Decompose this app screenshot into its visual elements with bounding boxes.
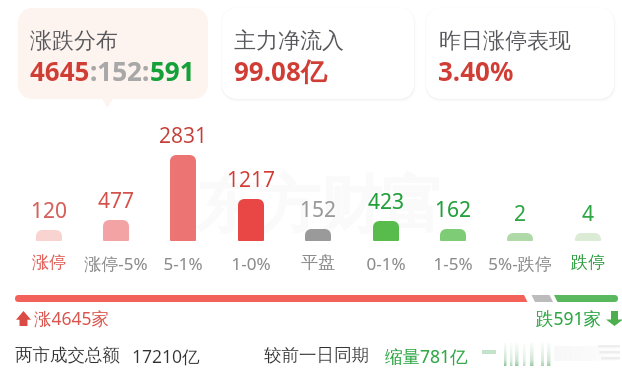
staticText: 4645 bbox=[30, 53, 90, 88]
staticText: 涨跌分布 bbox=[30, 27, 118, 55]
staticText: 主力净流入 bbox=[234, 27, 344, 55]
button[interactable]: 主力净流入 bbox=[222, 8, 414, 99]
staticText: 591 bbox=[150, 53, 195, 88]
button[interactable] bbox=[285, 112, 351, 272]
staticText: 162 bbox=[419, 195, 487, 224]
button[interactable] bbox=[487, 112, 553, 272]
staticText: :152: bbox=[90, 53, 150, 88]
button[interactable] bbox=[353, 112, 419, 272]
staticText: 较前一日同期 bbox=[264, 344, 369, 366]
staticText: 152 bbox=[284, 195, 352, 224]
button[interactable]: 涨4645家 bbox=[16, 306, 110, 330]
staticText: 平盘 bbox=[273, 252, 363, 273]
staticText: 缩量781亿 bbox=[385, 344, 468, 368]
staticText: 1217 bbox=[217, 165, 285, 194]
staticText: 2 bbox=[486, 199, 554, 228]
staticText: 东方财富 bbox=[196, 166, 444, 244]
staticText: 423 bbox=[352, 187, 420, 216]
button[interactable] bbox=[420, 112, 486, 272]
button[interactable]: 昨日涨停表现 bbox=[426, 8, 614, 99]
staticText: 跌停 bbox=[543, 252, 622, 273]
button[interactable]: 跌591家 bbox=[536, 306, 622, 330]
button[interactable] bbox=[16, 112, 82, 272]
staticText: 0-1% bbox=[341, 252, 431, 275]
staticText: 2831 bbox=[149, 121, 217, 150]
button[interactable] bbox=[218, 112, 284, 272]
staticText: 99.08亿 bbox=[234, 53, 327, 89]
staticText: 3.40% bbox=[438, 53, 514, 88]
staticText: 477 bbox=[82, 186, 150, 215]
button[interactable] bbox=[555, 112, 621, 272]
staticText: 5-1% bbox=[138, 252, 228, 275]
staticText: 涨停 bbox=[4, 252, 94, 273]
button[interactable]: 涨跌分布 bbox=[18, 8, 208, 99]
staticText: 4 bbox=[554, 199, 622, 228]
staticText: 涨4645家 bbox=[34, 306, 110, 330]
staticText: 1-5% bbox=[408, 252, 498, 275]
staticText: 1-0% bbox=[206, 252, 296, 275]
staticText: 跌591家 bbox=[536, 306, 602, 330]
button[interactable] bbox=[83, 112, 149, 272]
staticText: 5%-跌停 bbox=[475, 252, 565, 275]
staticText: 昨日涨停表现 bbox=[439, 27, 571, 55]
staticText: 120 bbox=[15, 196, 83, 225]
staticText: 17210亿 bbox=[132, 344, 200, 368]
button[interactable] bbox=[150, 112, 216, 272]
staticText: 涨停-5% bbox=[71, 252, 161, 275]
staticText: 两市成交总额 bbox=[15, 344, 120, 366]
